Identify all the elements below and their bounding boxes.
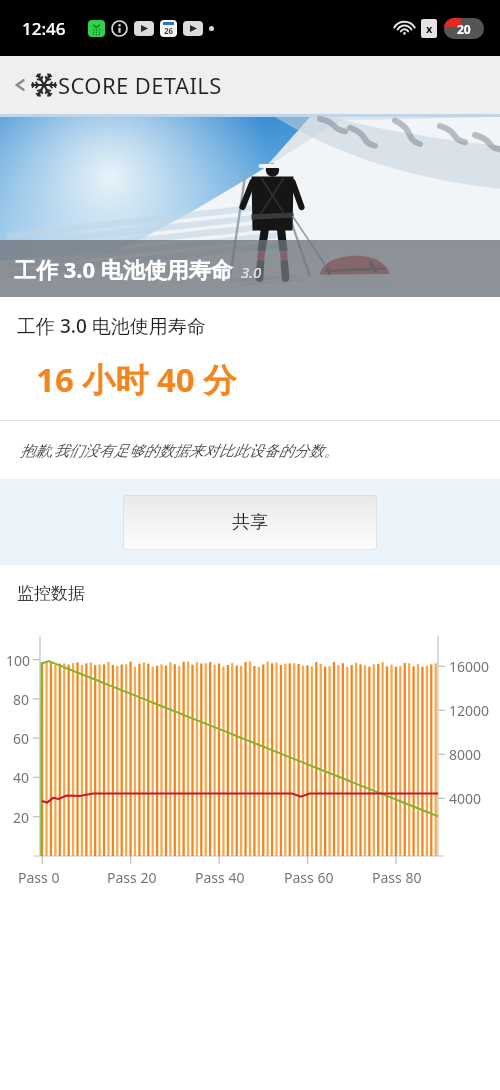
staticText: 80 [13,690,30,709]
staticText: 监控数据 [17,583,85,604]
staticText: 20 [13,808,30,827]
staticText: SCORE DETAILS [58,70,222,100]
button[interactable]: Back [8,72,61,98]
staticText: 共享 [232,511,268,534]
staticText: 20 [457,21,471,37]
staticText: 4000 [449,789,482,808]
staticText: 40 [13,768,30,787]
staticText: 工作 3.0 电池使用寿命 [14,254,233,284]
staticText: 抱歉,我们没有足够的数据来对比此设备的分数。 [20,440,339,460]
staticText: x [426,21,433,36]
staticText: 100 [6,651,31,670]
staticText: Pass 60 [284,868,334,887]
staticText: 3.0 [241,262,262,282]
button[interactable]: 共享 [123,495,377,550]
staticText: Pass 0 [18,868,60,887]
staticText: Pass 20 [107,868,157,887]
staticText: 8000 [449,745,482,764]
staticText: 16 小时 40 分 [36,357,237,402]
staticText: 16000 [449,657,490,676]
staticText: 12000 [449,701,490,720]
staticText: 26 [164,25,174,36]
staticText: Pass 80 [372,868,422,887]
staticText: 12:46 [22,17,66,40]
staticText: 工作 3.0 电池使用寿命 [17,313,206,339]
staticText: 60 [13,729,30,748]
staticText: Pass 40 [195,868,245,887]
